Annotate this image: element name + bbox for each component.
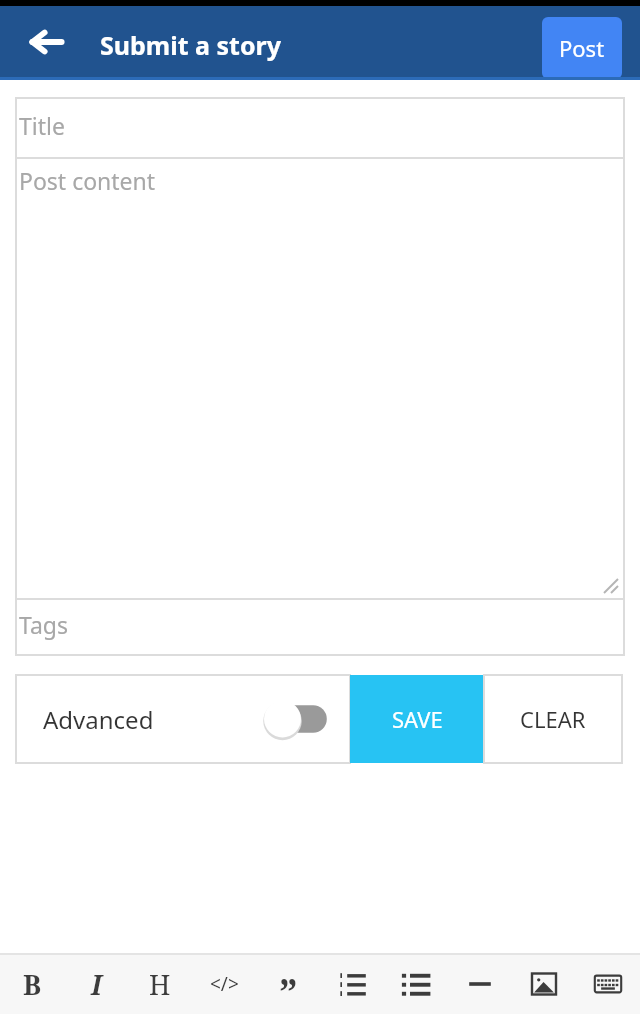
staticText: Tags <box>19 609 69 640</box>
staticText: Post <box>559 33 605 63</box>
button[interactable]: Bulleted list <box>384 954 448 1014</box>
staticText: ” <box>279 965 298 1014</box>
button[interactable]: Advanced <box>16 675 350 763</box>
button[interactable]: Horizontal rule <box>448 954 512 1014</box>
button[interactable]: Advanced toggle <box>262 697 334 741</box>
staticText: B <box>23 966 42 1003</box>
button[interactable]: Bold <box>0 954 64 1014</box>
button[interactable]: Post <box>542 17 622 79</box>
staticText: Title <box>19 110 65 141</box>
staticText: Post content <box>19 165 156 196</box>
staticText: Advanced <box>43 703 154 736</box>
button[interactable]: Post content <box>16 158 624 599</box>
button[interactable]: Numbered list <box>320 954 384 1014</box>
button[interactable]: Code <box>192 954 256 1014</box>
button[interactable]: Keyboard <box>576 954 640 1014</box>
button[interactable]: Heading <box>128 954 192 1014</box>
button[interactable]: CLEAR <box>484 675 622 763</box>
button[interactable]: SAVE <box>350 675 484 763</box>
button[interactable]: Quote <box>256 954 320 1014</box>
staticText: Submit a story <box>100 28 281 62</box>
staticText: SAVE <box>392 704 443 734</box>
button[interactable]: Back <box>18 14 74 70</box>
staticText: I <box>91 966 102 1003</box>
staticText: H <box>149 966 171 1003</box>
button[interactable]: Italic <box>64 954 128 1014</box>
staticText: </> <box>210 971 239 997</box>
button[interactable]: Insert image <box>512 954 576 1014</box>
button[interactable]: Tags <box>16 599 624 655</box>
button[interactable]: Title <box>16 98 624 158</box>
staticText: CLEAR <box>520 704 586 734</box>
